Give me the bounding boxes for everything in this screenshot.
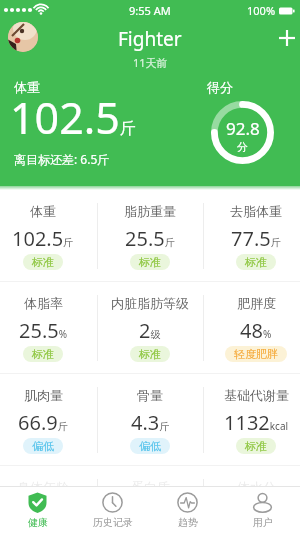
button[interactable]: 体脂率 <box>0 282 98 374</box>
staticText: 102.5斤 <box>12 225 74 252</box>
button[interactable]: 历史记录 <box>75 487 150 533</box>
staticText: 肥胖度 <box>237 295 276 311</box>
button[interactable]: Fighter <box>118 26 182 52</box>
staticText: 分 <box>237 140 248 154</box>
button[interactable]: 肥胖度 <box>201 282 300 374</box>
staticText: 轻度肥胖 <box>234 347 278 361</box>
staticText: 9:55 AM <box>129 3 171 18</box>
staticText: 基础代谢量 <box>224 387 289 403</box>
staticText: 骨量 <box>137 387 163 403</box>
staticText: 体水分 <box>237 479 276 495</box>
staticText: 内脏脂肪等级 <box>111 295 189 311</box>
staticText: 25.5% <box>19 317 67 344</box>
staticText: 66.9斤 <box>18 409 68 436</box>
staticText: 用户 <box>253 516 273 529</box>
staticText: 77.5斤 <box>231 225 281 252</box>
button[interactable] <box>279 30 295 46</box>
staticText: 肌肉量 <box>24 387 63 403</box>
staticText: 100% <box>247 3 276 18</box>
staticText: 标准 <box>32 255 54 269</box>
button[interactable]: 肌肉量 <box>0 374 98 466</box>
staticText: 92.8 <box>226 117 260 140</box>
staticText: 4.3斤 <box>131 409 170 436</box>
staticText: 2级 <box>139 317 161 344</box>
button[interactable]: 体重 <box>0 190 98 282</box>
staticText: 标准 <box>139 255 161 269</box>
staticText: 11天前 <box>133 55 168 70</box>
staticText: 1132kcal <box>224 409 289 436</box>
staticText: 体重 <box>30 203 56 219</box>
staticText: 偏低 <box>32 439 54 453</box>
staticText: 趋势 <box>178 516 198 529</box>
staticText: 标准 <box>139 347 161 361</box>
staticText: 标准 <box>245 439 267 453</box>
staticText: 体脂率 <box>24 295 63 311</box>
staticText: 蛋白质 <box>131 479 170 495</box>
button[interactable] <box>8 22 38 52</box>
button[interactable]: 基础代谢量 <box>201 374 300 466</box>
staticText: 脂肪重量 <box>124 203 176 219</box>
button[interactable]: 内脏脂肪等级 <box>95 282 205 374</box>
staticText: 去脂体重 <box>230 203 282 219</box>
staticText: 25.5斤 <box>125 225 175 252</box>
staticText: 体重 <box>14 79 40 95</box>
button[interactable]: 趋势 <box>150 487 225 533</box>
staticText: 离目标还差: 6.5斤 <box>14 151 110 167</box>
button[interactable]: 去脂体重 <box>201 190 300 282</box>
staticText: 48% <box>240 317 272 344</box>
staticText: 102.5斤 <box>10 88 136 147</box>
staticText: 健康 <box>28 516 48 529</box>
staticText: 偏低 <box>139 439 161 453</box>
staticText: 身体年龄 <box>17 479 69 495</box>
staticText: 标准 <box>32 347 54 361</box>
button[interactable]: 健康 <box>0 487 75 533</box>
staticText: 得分 <box>207 79 233 95</box>
button[interactable]: 用户 <box>225 487 300 533</box>
button[interactable]: 脂肪重量 <box>95 190 205 282</box>
staticText: 标准 <box>245 255 267 269</box>
button[interactable]: 骨量 <box>95 374 205 466</box>
staticText: 历史记录 <box>93 516 133 529</box>
